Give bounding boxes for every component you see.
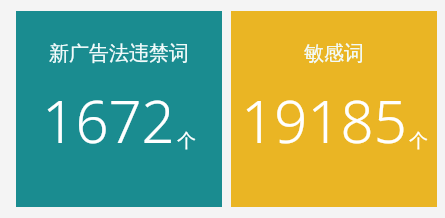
button[interactable]: 新广告法违禁词 [16, 11, 222, 207]
staticText: 个 [177, 129, 196, 153]
staticText: 1672 [42, 81, 175, 160]
staticText: 19185 [241, 81, 407, 160]
staticText: 个 [409, 129, 428, 153]
button[interactable]: 敏感词 [231, 11, 437, 207]
staticText: 新广告法违禁词 [49, 41, 189, 66]
staticText: 敏感词 [304, 41, 364, 66]
